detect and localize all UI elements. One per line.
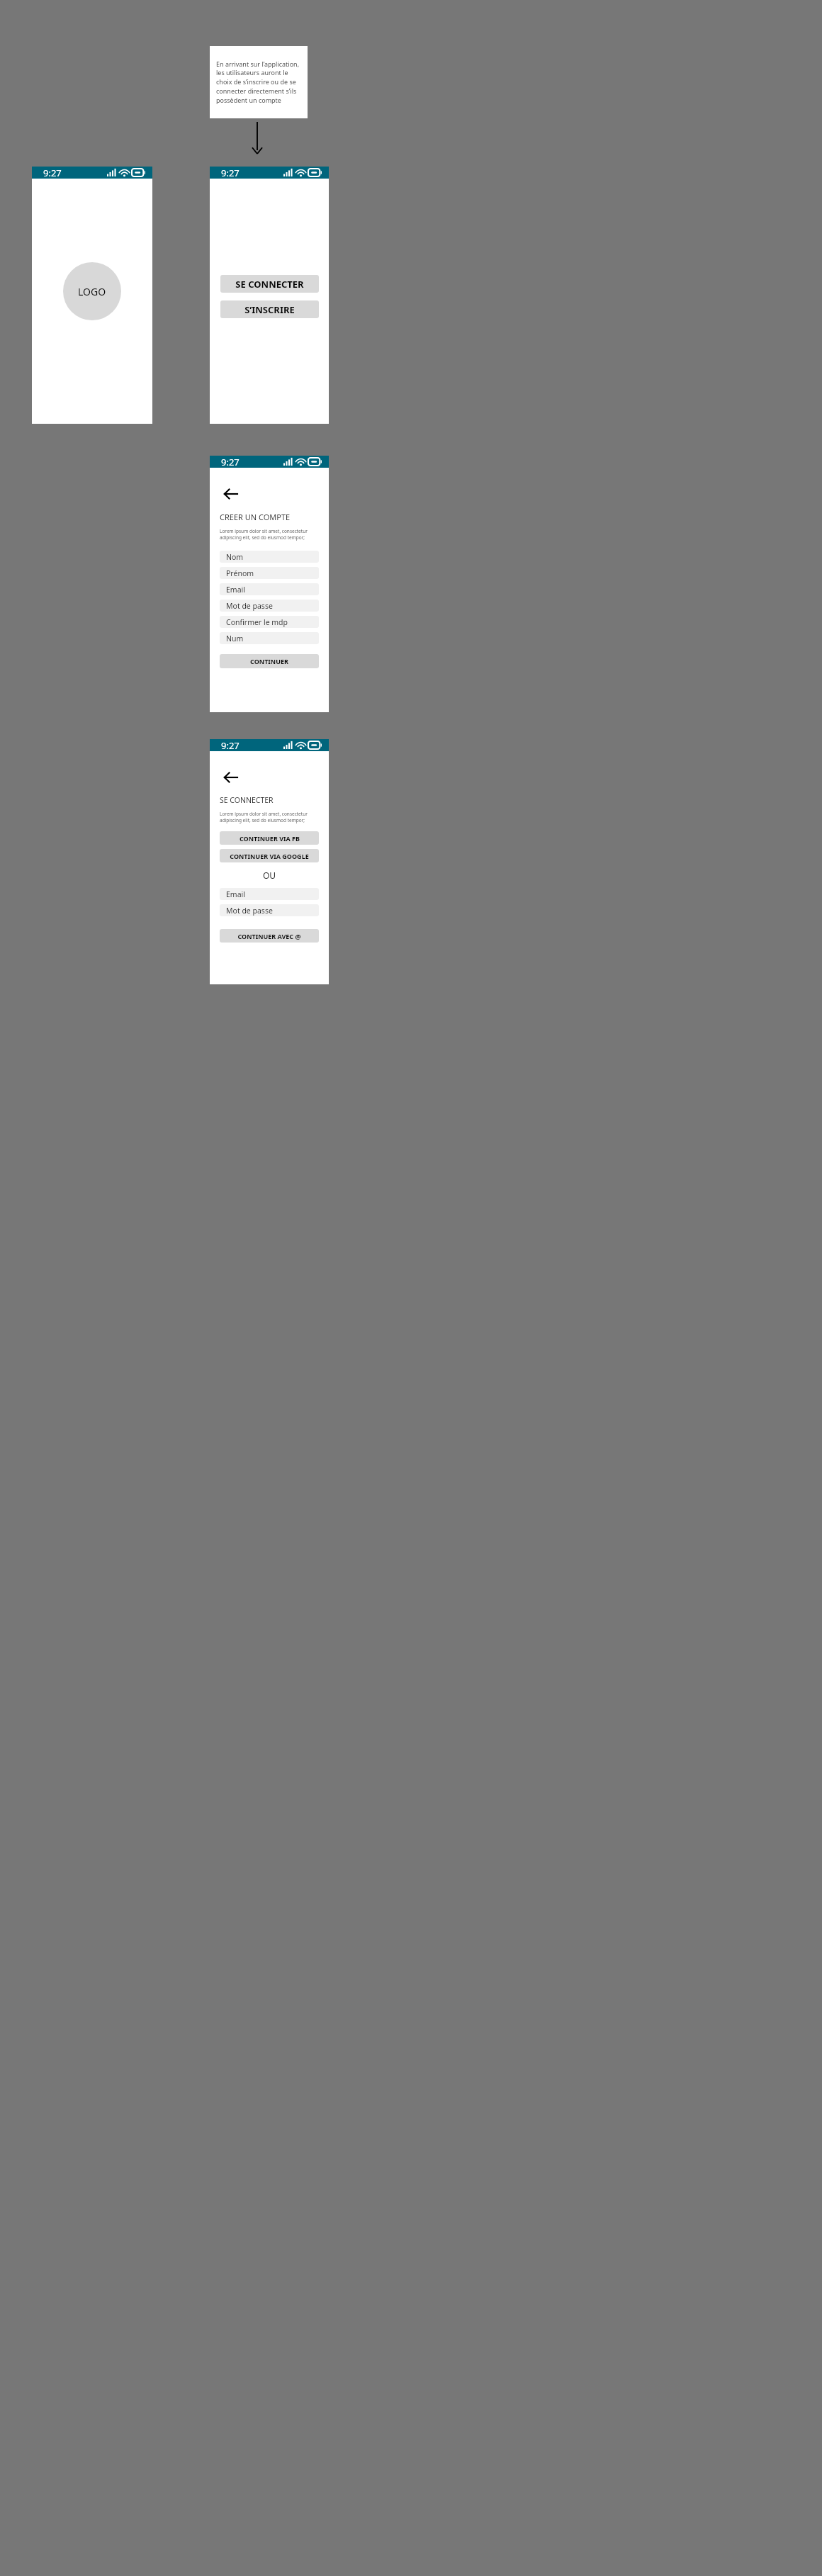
staticText: 9:27 [221, 167, 240, 179]
staticText: Confirmer le mdp [226, 617, 288, 627]
staticText: CONTINUER [250, 657, 288, 665]
staticText: Prénom [226, 568, 254, 578]
button[interactable]: Back [220, 483, 241, 505]
staticText: LOGO [78, 285, 106, 298]
staticText: CONTINUER AVEC @ [237, 932, 301, 940]
button[interactable]: CONTINUER VIA FB [220, 831, 319, 845]
staticText: CREER UN COMPTE [220, 512, 291, 522]
staticText: Lorem ipsum dolor sit amet, consectetur … [220, 528, 319, 541]
button[interactable]: LOGO [63, 262, 121, 320]
staticText: OU [263, 870, 276, 881]
button[interactable]: Mot de passe [220, 904, 319, 916]
staticText: CONTINUER VIA GOOGLE [230, 852, 309, 860]
staticText: Lorem ipsum dolor sit amet, consectetur … [220, 811, 319, 823]
staticText: Mot de passe [226, 906, 273, 916]
staticText: 9:27 [221, 456, 240, 468]
staticText: En arrivant sur l’application, les utili… [216, 60, 301, 105]
button[interactable]: Email [220, 583, 319, 595]
staticText: CONTINUER VIA FB [240, 834, 300, 843]
staticText: SE CONNECTER [235, 278, 304, 291]
staticText: SE CONNECTER [220, 795, 274, 805]
button[interactable]: Confirmer le mdp [220, 616, 319, 628]
button[interactable]: CONTINUER [220, 654, 319, 668]
button[interactable]: Mot de passe [220, 600, 319, 612]
button[interactable]: CONTINUER VIA GOOGLE [220, 849, 319, 862]
button[interactable]: Email [220, 888, 319, 900]
button[interactable]: Nom [220, 551, 319, 563]
staticText: Num [226, 634, 244, 643]
button[interactable]: CONTINUER AVEC @ [220, 929, 319, 943]
staticText: 9:27 [43, 167, 62, 179]
button[interactable]: Back [220, 767, 241, 788]
button[interactable]: Prénom [220, 567, 319, 579]
button[interactable]: SE CONNECTER [220, 275, 319, 293]
button[interactable]: Num [220, 632, 319, 644]
staticText: Nom [226, 552, 244, 562]
staticText: Email [226, 585, 245, 595]
staticText: S’INSCRIRE [244, 303, 295, 316]
button[interactable]: S’INSCRIRE [220, 300, 319, 318]
staticText: 9:27 [221, 739, 240, 751]
staticText: Mot de passe [226, 601, 273, 611]
staticText: Email [226, 889, 245, 899]
